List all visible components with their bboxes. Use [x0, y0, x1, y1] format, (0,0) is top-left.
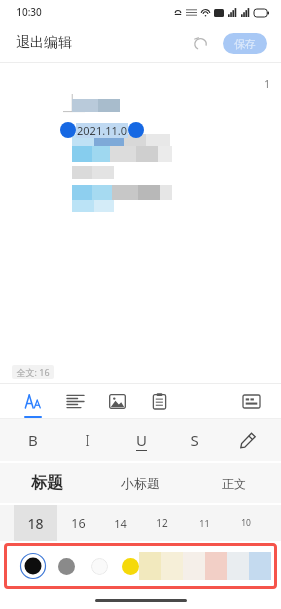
- staticText: 2021.11.0: [77, 123, 127, 138]
- staticText: 保存: [234, 37, 256, 51]
- button[interactable]: Align: [54, 384, 96, 418]
- button[interactable]: 正文: [187, 463, 281, 503]
- staticText: I: [85, 430, 90, 450]
- button[interactable]: 标题: [0, 463, 93, 503]
- staticText: 12: [156, 516, 168, 530]
- staticText: S: [190, 430, 199, 450]
- button[interactable]: Gray color: [58, 558, 75, 575]
- staticText: U: [136, 430, 147, 450]
- button[interactable]: 10: [225, 505, 267, 541]
- staticText: 10: [241, 517, 251, 529]
- staticText: 1: [264, 77, 270, 91]
- staticText: 11: [199, 517, 210, 529]
- button[interactable]: 11: [183, 505, 225, 541]
- button[interactable]: 保存: [223, 33, 267, 54]
- button[interactable]: 18: [14, 505, 57, 541]
- button[interactable]: Text format: [12, 384, 54, 418]
- staticText: 正文: [222, 476, 246, 491]
- button[interactable]: Keyboard: [235, 385, 267, 417]
- button[interactable]: U: [126, 425, 156, 455]
- button[interactable]: 小标题: [93, 463, 187, 503]
- button[interactable]: 14: [99, 505, 141, 541]
- staticText: 18: [27, 514, 44, 533]
- staticText: 10:30: [16, 5, 42, 19]
- button[interactable]: I: [72, 425, 102, 455]
- staticText: B: [28, 430, 38, 450]
- staticText: 标题: [31, 473, 63, 493]
- button[interactable]: 退出编辑: [16, 34, 72, 52]
- staticText: 退出编辑: [16, 34, 72, 52]
- button[interactable]: Checklist: [138, 384, 180, 418]
- staticText: 16: [71, 515, 86, 532]
- button[interactable]: Highlight: [233, 425, 263, 455]
- button[interactable]: 12: [141, 505, 183, 541]
- button[interactable]: Yellow color: [122, 558, 139, 575]
- button[interactable]: Black color: [20, 553, 46, 579]
- button[interactable]: 16: [57, 505, 99, 541]
- staticText: 14: [114, 516, 127, 531]
- button[interactable]: B: [18, 425, 48, 455]
- button[interactable]: 1: [253, 71, 281, 97]
- button[interactable]: S: [179, 425, 209, 455]
- button[interactable]: Insert image: [96, 384, 138, 418]
- button[interactable]: White color: [91, 558, 108, 575]
- staticText: 全文: 16: [16, 366, 50, 378]
- button[interactable]: Undo: [187, 30, 213, 56]
- staticText: 小标题: [121, 475, 160, 491]
